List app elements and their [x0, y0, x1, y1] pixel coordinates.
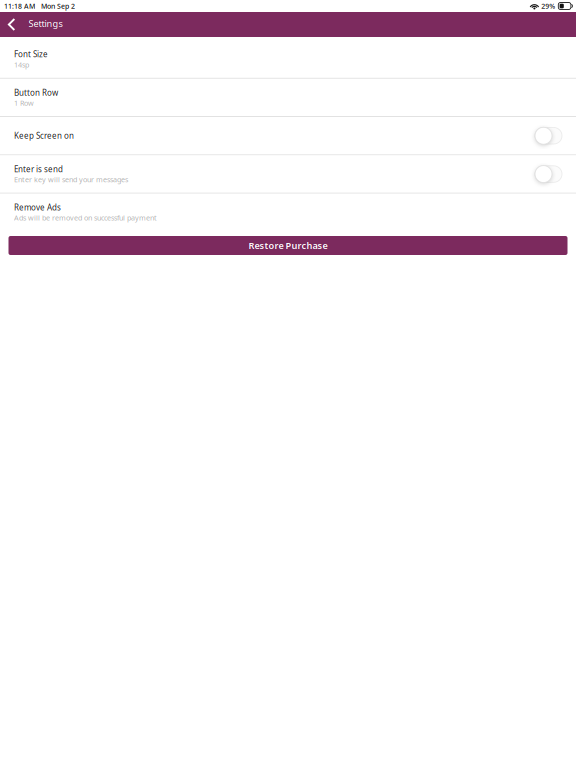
button[interactable]: Font Size — [0, 40, 576, 78]
staticText: 29% — [541, 1, 555, 11]
staticText: Settings — [28, 17, 62, 30]
button[interactable]: Keep Screen on — [0, 117, 576, 154]
staticText: 1 Row — [14, 98, 34, 108]
button[interactable]: Back — [0, 12, 23, 37]
staticText: Enter key will send your messages — [14, 175, 128, 184]
button[interactable]: Enter is send — [0, 155, 576, 193]
staticText: Button Row — [14, 87, 58, 98]
staticText: Remove Ads — [14, 202, 61, 213]
button[interactable]: Button Row — [0, 79, 576, 116]
button[interactable]: Remove Ads — [0, 194, 576, 231]
staticText: Font Size — [14, 49, 48, 60]
staticText: Enter is send — [14, 164, 63, 175]
staticText: 14sp — [14, 60, 29, 69]
staticText: Restore Purchase — [248, 239, 327, 252]
staticText: Mon Sep 2 — [41, 1, 75, 11]
staticText: 11:18 AM — [4, 1, 35, 11]
staticText: Ads will be removed on successful paymen… — [14, 213, 157, 223]
staticText: Keep Screen on — [14, 130, 74, 141]
button[interactable]: Restore Purchase — [8, 236, 567, 255]
